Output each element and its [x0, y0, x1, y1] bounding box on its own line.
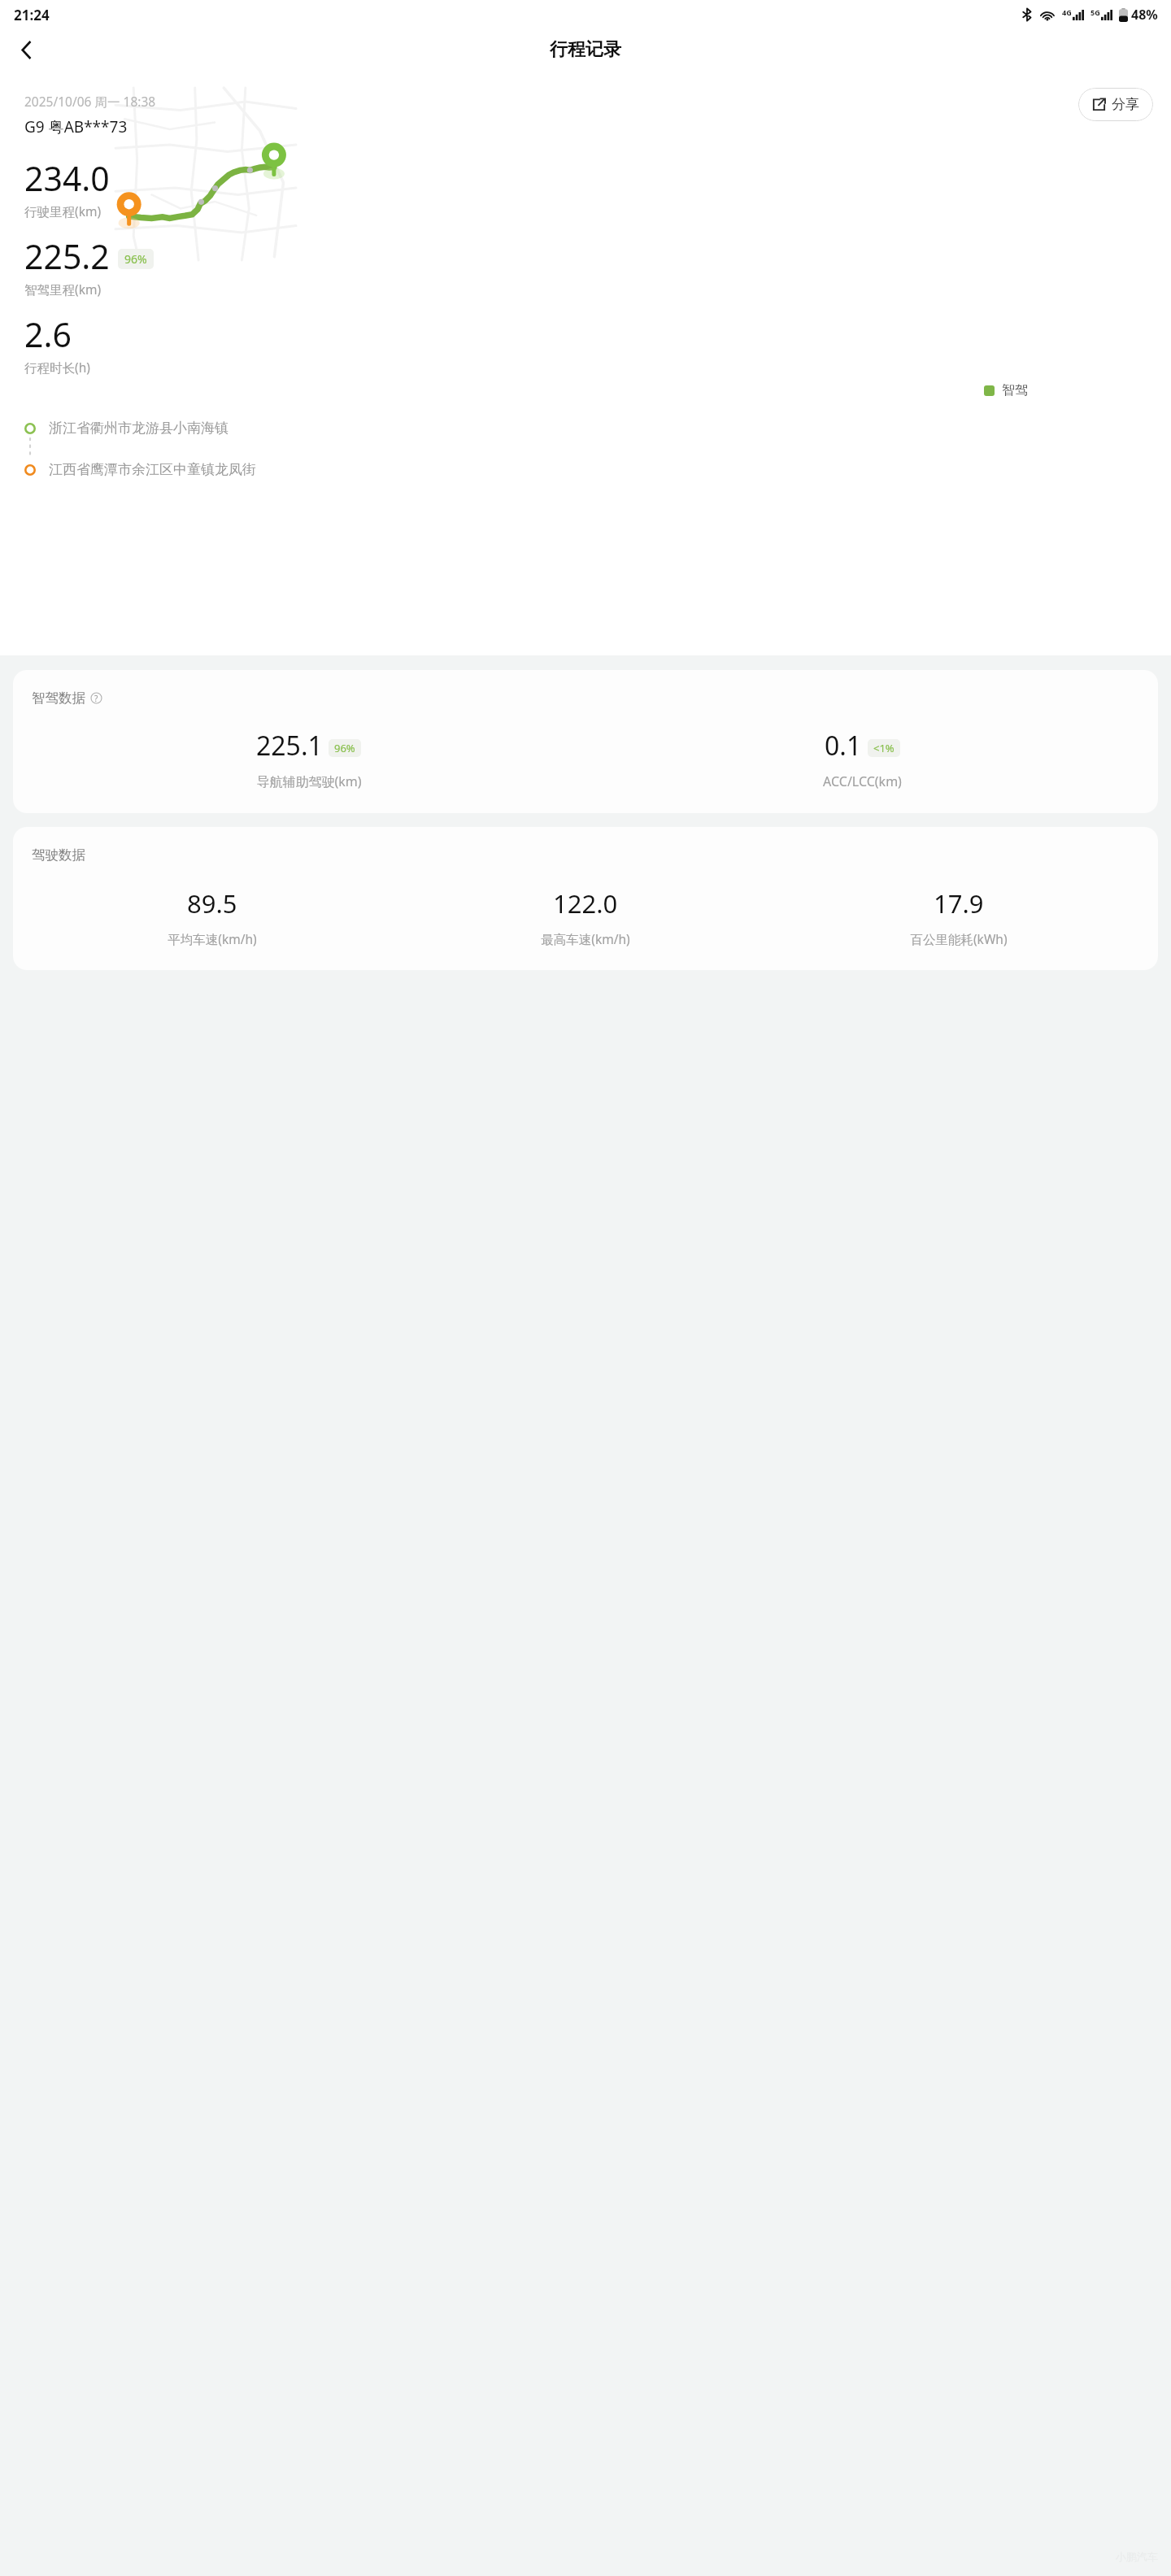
staticText: 行程时长(h)	[24, 359, 90, 376]
staticText: ?	[94, 693, 98, 704]
staticText: 89.5	[187, 886, 237, 920]
staticText: 5G	[1090, 7, 1100, 17]
staticText: 234.0	[24, 155, 110, 201]
staticText: 225.1	[256, 728, 323, 764]
staticText: 行驶里程(km)	[24, 202, 102, 220]
staticText: 17.9	[934, 886, 984, 920]
staticText: 4G	[1062, 7, 1072, 17]
staticText: 0.1	[825, 728, 862, 764]
staticText: 96%	[124, 251, 147, 267]
button[interactable]: 驾驶数据	[13, 827, 1158, 970]
staticText: 96%	[334, 741, 355, 755]
staticText: 江西省鹰潭市余江区中童镇龙凤街	[49, 461, 256, 478]
staticText: 小鹏汽车	[1116, 2550, 1158, 2563]
staticText: 智驾里程(km)	[24, 281, 102, 298]
staticText: 浙江省衢州市龙游县小南海镇	[49, 420, 229, 437]
staticText: 智驾	[1002, 382, 1028, 398]
button[interactable]: 分享	[1078, 88, 1153, 121]
staticText: 2.6	[24, 311, 72, 357]
staticText: 225.2	[24, 233, 110, 279]
staticText: 导航辅助驾驶(km)	[256, 772, 362, 790]
staticText: 122.0	[553, 886, 618, 920]
staticText: 百公里能耗(kWh)	[910, 930, 1008, 947]
staticText: 行程记录	[550, 38, 621, 61]
staticText: 21:24	[14, 6, 50, 24]
staticText: 平均车速(km/h)	[168, 930, 257, 947]
staticText: 驾驶数据	[32, 846, 85, 864]
staticText: <1%	[873, 741, 895, 755]
staticText: G9 粤AB***73	[24, 116, 128, 137]
staticText: 最高车速(km/h)	[541, 930, 630, 947]
button[interactable]: 智驾数据	[13, 670, 1158, 813]
staticText: 分享	[1112, 96, 1139, 113]
staticText: 48%	[1131, 6, 1158, 24]
staticText: ACC/LCC(km)	[823, 772, 902, 790]
staticText: 2025/10/06 周一 18:38	[24, 93, 156, 110]
button[interactable]: 返回	[7, 30, 46, 69]
staticText: 智驾数据	[32, 690, 85, 707]
